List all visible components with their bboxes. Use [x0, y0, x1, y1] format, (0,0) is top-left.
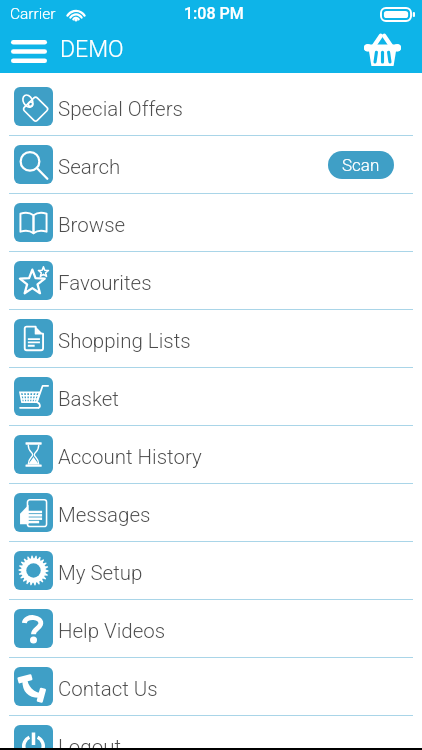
- button[interactable]: Favourites: [0, 252, 422, 309]
- staticText: Messages: [58, 503, 151, 527]
- button[interactable]: Messages: [0, 484, 422, 541]
- button[interactable]: Scan: [328, 151, 394, 179]
- button[interactable]: Basket: [0, 368, 422, 425]
- staticText: Help Videos: [58, 619, 166, 643]
- staticText: My Setup: [58, 561, 143, 585]
- button[interactable]: Browse: [0, 194, 422, 251]
- staticText: Favourites: [58, 271, 152, 295]
- button[interactable]: Basket: [354, 27, 410, 71]
- button[interactable]: Shopping Lists: [0, 310, 422, 367]
- button[interactable]: My Setup: [0, 542, 422, 599]
- button[interactable]: Logout: [0, 716, 422, 750]
- staticText: Browse: [58, 213, 126, 237]
- staticText: Contact Us: [58, 677, 158, 701]
- button[interactable]: Account History: [0, 426, 422, 483]
- staticText: Carrier: [10, 5, 56, 23]
- button[interactable]: Help Videos: [0, 600, 422, 657]
- button[interactable]: Search: [0, 136, 422, 193]
- button[interactable]: Menu: [5, 35, 52, 67]
- staticText: 1:08 PM: [184, 4, 244, 23]
- staticText: Basket: [58, 387, 119, 411]
- staticText: Search: [58, 155, 121, 179]
- button[interactable]: Special Offers: [0, 78, 422, 135]
- staticText: Logout: [58, 735, 122, 750]
- staticText: Scan: [342, 155, 380, 175]
- staticText: Account History: [58, 445, 202, 469]
- staticText: DEMO: [60, 36, 124, 63]
- staticText: Special Offers: [58, 97, 183, 121]
- staticText: Shopping Lists: [58, 329, 191, 353]
- button[interactable]: Contact Us: [0, 658, 422, 715]
